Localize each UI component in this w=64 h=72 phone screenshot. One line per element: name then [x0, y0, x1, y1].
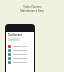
button[interactable]	[6, 44, 34, 48]
button[interactable]	[6, 48, 34, 52]
button[interactable]	[6, 52, 34, 56]
button[interactable]	[6, 56, 34, 60]
staticText: Dashboard	[8, 33, 23, 37]
staticText: Maintenance Easy	[20, 9, 44, 13]
staticText: Video Doctors	[23, 5, 42, 9]
button[interactable]	[6, 60, 34, 64]
